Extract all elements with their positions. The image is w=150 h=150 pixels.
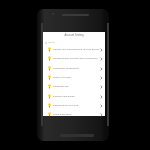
staticText: Notification preferences	[53, 67, 100, 70]
staticText: Payment and billing	[53, 95, 100, 98]
staticText: Learn more here	[53, 113, 100, 116]
button[interactable]: Payment and billing	[43, 92, 105, 101]
button[interactable]: Search	[43, 40, 105, 45]
staticText: Delete the account now	[53, 104, 100, 107]
button[interactable]: Language and	[43, 82, 105, 91]
button[interactable]: Account Setting	[43, 32, 105, 40]
button[interactable]: Notification preferences	[43, 64, 105, 73]
staticText: Update your password and security detail…	[53, 48, 100, 51]
staticText: Manage linked accounts and connections n…	[53, 57, 100, 60]
button[interactable]: Delete the account now	[43, 101, 105, 110]
staticText: Privacy and data	[53, 76, 100, 79]
button[interactable]: Privacy and data	[43, 73, 105, 82]
button[interactable]: Manage linked accounts and connections n…	[43, 54, 105, 63]
staticText: Language and	[53, 85, 100, 88]
staticText: Account Setting	[64, 33, 84, 37]
button[interactable]: Learn more here	[43, 110, 105, 119]
staticText: Search	[48, 41, 56, 44]
button[interactable]: Update your password and security detail…	[43, 45, 105, 54]
